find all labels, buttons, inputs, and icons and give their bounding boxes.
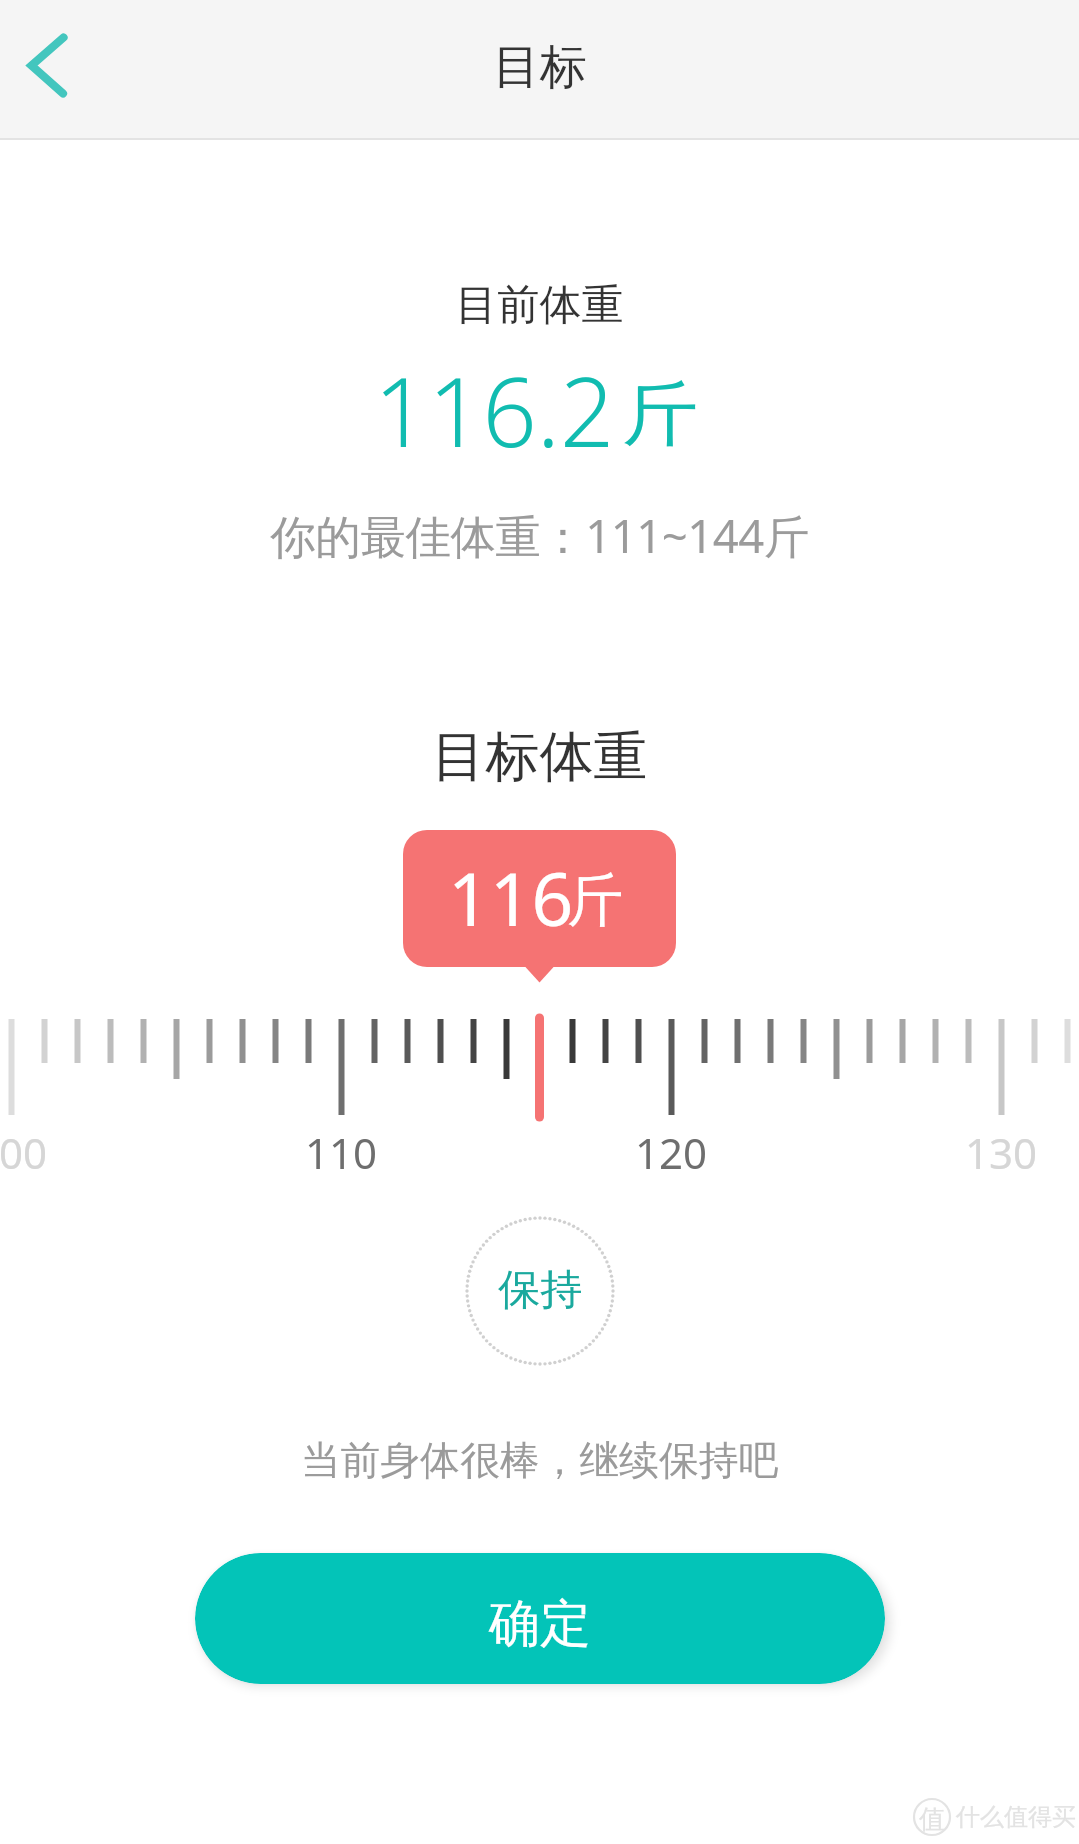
staticText: 110 — [305, 1124, 378, 1181]
staticText: 130 — [965, 1124, 1038, 1181]
staticText: 保持 — [498, 1264, 582, 1317]
button[interactable]: 116 — [403, 830, 676, 967]
button[interactable]: 保持 — [467, 1218, 613, 1364]
staticText: 值 — [919, 1803, 945, 1836]
staticText: 116.2 — [374, 345, 615, 474]
button[interactable]: 确定 — [195, 1553, 885, 1684]
staticText: 当前身体很棒，继续保持吧 — [0, 1436, 1079, 1486]
staticText: 斤 — [622, 371, 694, 459]
staticText: 目标体重 — [0, 723, 1079, 791]
staticText: 120 — [635, 1124, 708, 1181]
staticText: 100 — [0, 1124, 48, 1181]
staticText: 确定 — [489, 1592, 591, 1656]
staticText: 目前体重 — [0, 279, 1079, 332]
staticText: 你的最佳体重：111~144斤 — [0, 504, 1079, 566]
staticText: 斤 — [567, 865, 610, 937]
button[interactable]: Back — [0, 0, 110, 140]
staticText: 116 — [448, 848, 574, 947]
staticText: 目标 — [493, 38, 587, 97]
staticText: 什么值得买 — [956, 1802, 1076, 1832]
